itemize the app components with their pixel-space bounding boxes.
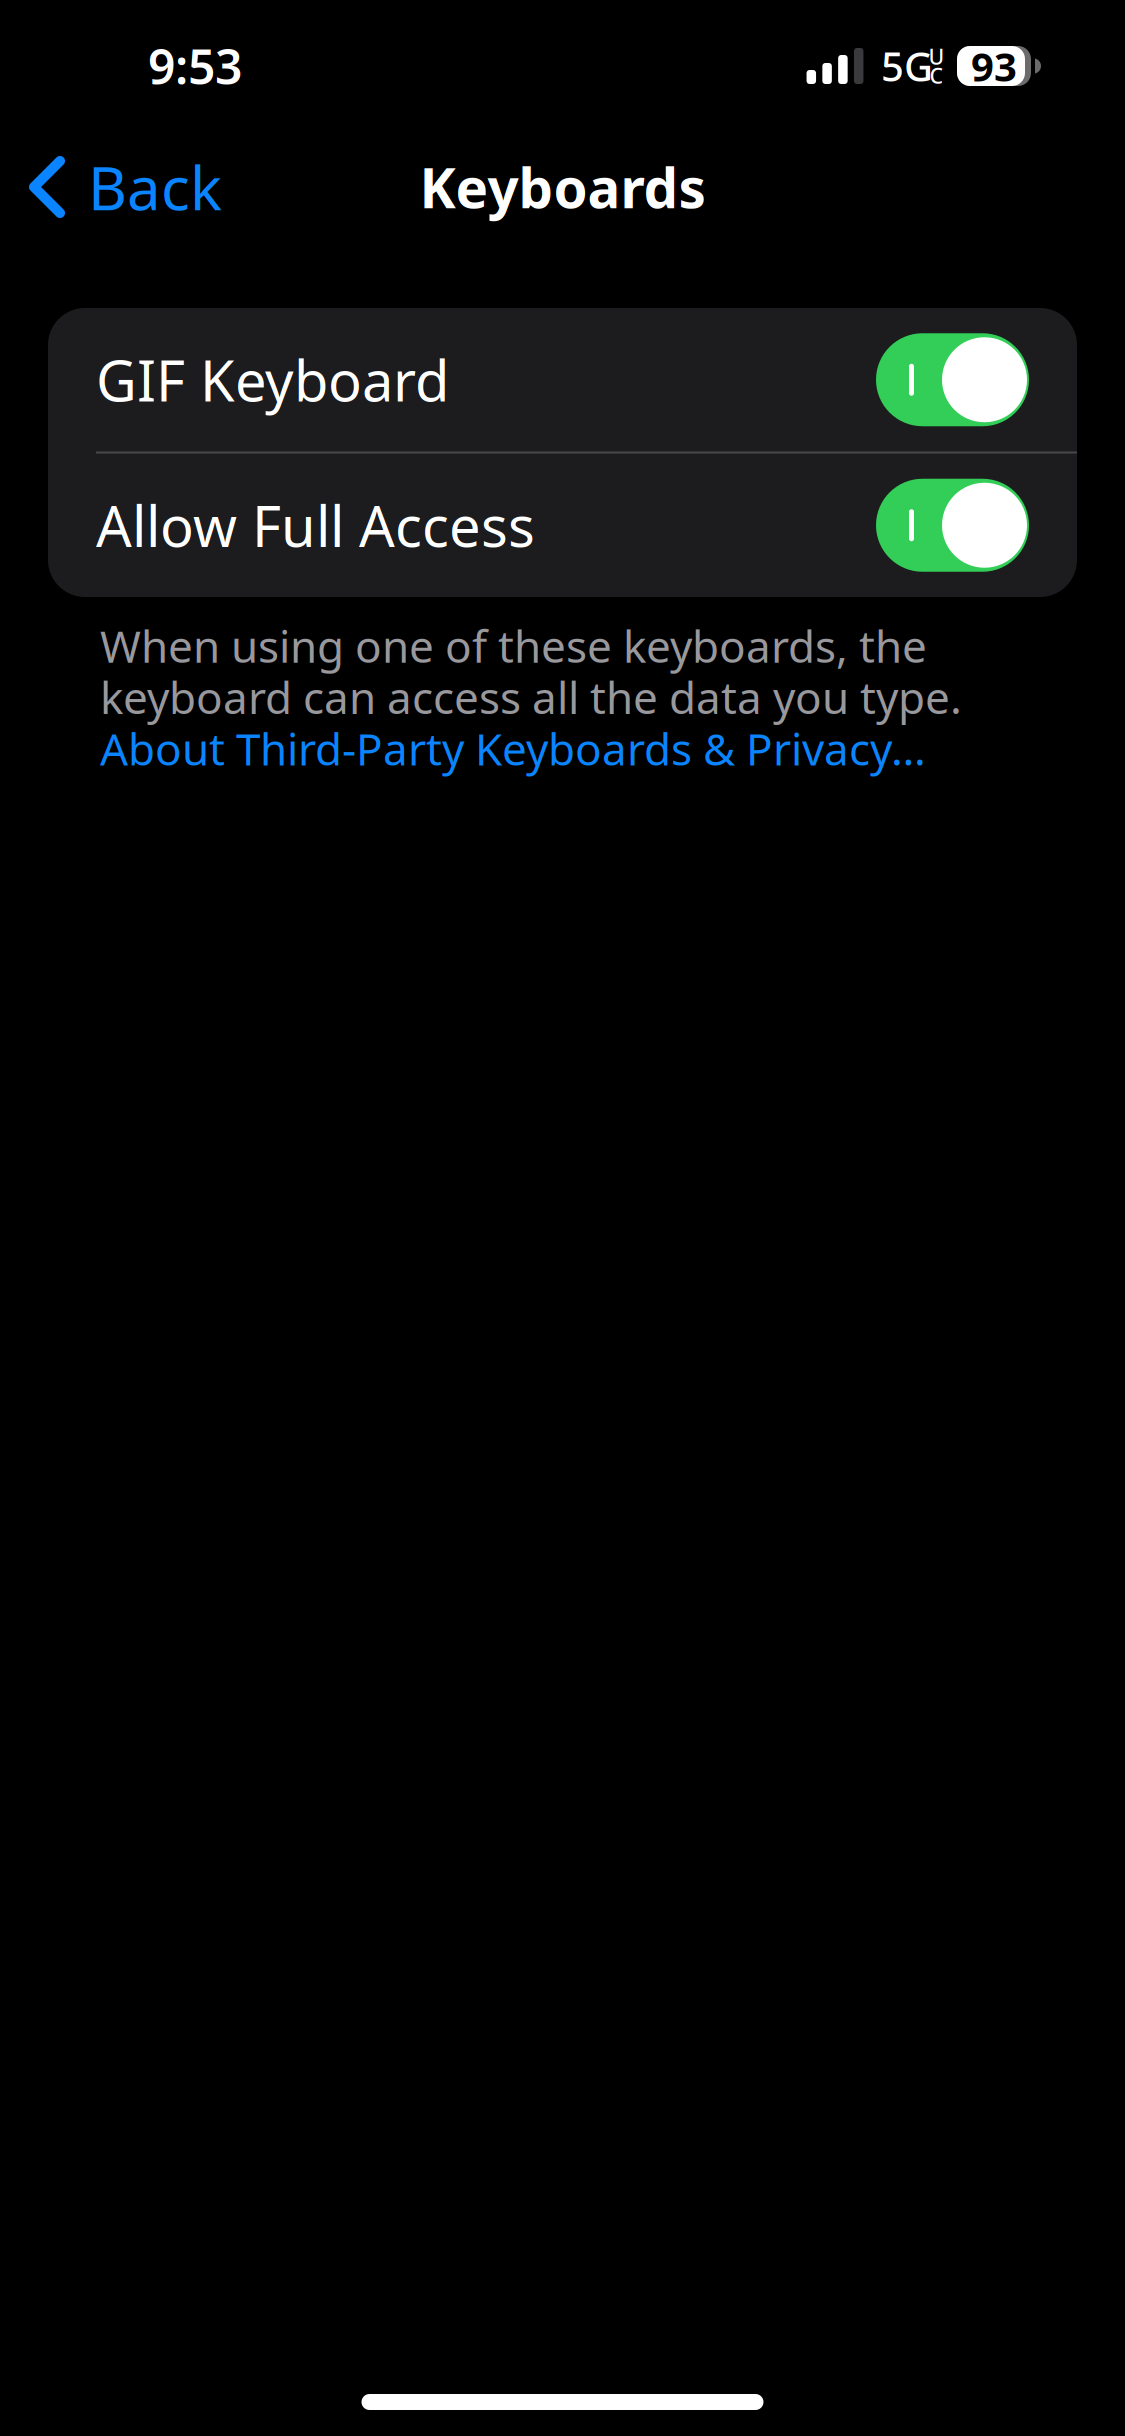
staticText: 9:53 — [148, 34, 242, 98]
staticText: Allow Full Access — [96, 488, 535, 562]
staticText: 5G — [881, 39, 933, 92]
button[interactable]: GIF Keyboard — [48, 308, 1077, 451]
staticText: GIF Keyboard — [96, 343, 449, 417]
button[interactable]: Allow Full Access — [48, 453, 1077, 597]
staticText: C — [929, 61, 943, 90]
button[interactable]: About Third-Party Keyboards & Privacy… — [100, 723, 926, 774]
staticText: Back — [88, 147, 222, 227]
staticText: 93 — [971, 39, 1017, 92]
staticText: U — [928, 42, 944, 71]
staticText: When using one of these keyboards, the — [100, 616, 927, 675]
staticText: keyboard can access all the data you typ… — [100, 668, 962, 726]
staticText: Keyboards — [419, 151, 705, 223]
button[interactable]: Back — [0, 132, 246, 242]
staticText: About Third-Party Keyboards & Privacy… — [100, 719, 926, 777]
